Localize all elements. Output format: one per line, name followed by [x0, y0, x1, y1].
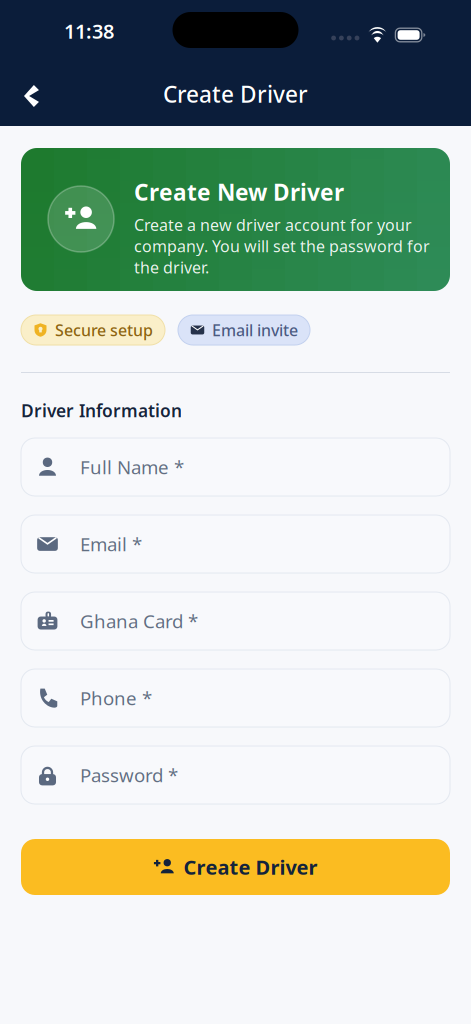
staticText: Phone *	[80, 686, 152, 710]
button[interactable]: Phone *	[21, 669, 450, 727]
staticText: Ghana Card *	[80, 609, 198, 633]
button[interactable]: Ghana Card *	[21, 592, 450, 650]
staticText: Password *	[80, 763, 178, 787]
button[interactable]: Secure setup	[21, 315, 165, 345]
staticText: Email *	[80, 532, 142, 556]
button[interactable]: Password *	[21, 746, 450, 804]
button[interactable]: Full Name *	[21, 438, 450, 496]
button[interactable]: Email invite	[178, 315, 310, 345]
button[interactable]: Create Driver	[21, 839, 450, 895]
staticText: Create Driver	[183, 854, 317, 880]
button[interactable]: Email *	[21, 515, 450, 573]
staticText: Create a new driver account for your com…	[134, 214, 430, 278]
staticText: 11:38	[64, 18, 114, 44]
staticText: Create Driver	[163, 79, 308, 109]
button[interactable]: Back	[0, 73, 51, 115]
staticText: Create New Driver	[134, 177, 344, 207]
staticText: Full Name *	[80, 455, 184, 479]
staticText: Secure setup	[55, 319, 153, 341]
staticText: Email invite	[212, 319, 298, 341]
staticText: Driver Information	[21, 399, 182, 422]
